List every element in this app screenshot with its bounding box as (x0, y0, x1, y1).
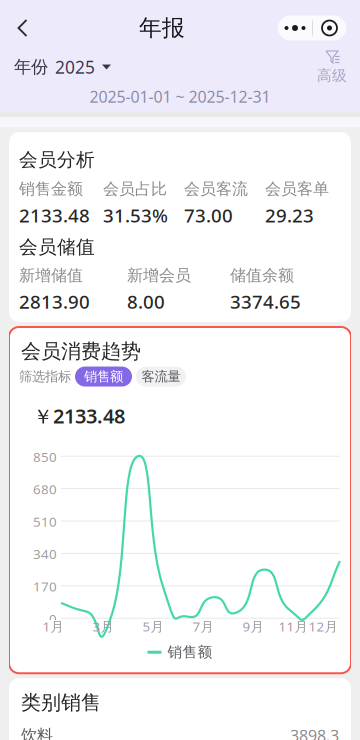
staticText: 储值余额 (230, 265, 294, 285)
staticText: 0 (49, 610, 57, 628)
staticText: 会员占比 (103, 179, 167, 199)
staticText: 筛选指标 (19, 368, 71, 385)
staticText: 12月 (308, 617, 337, 635)
staticText: 销售额 (167, 643, 212, 661)
staticText: 5月 (142, 617, 163, 635)
staticText: 会员客单 (265, 179, 329, 199)
staticText: 7月 (192, 617, 213, 635)
staticText: 类别销售 (21, 690, 101, 715)
staticText: 会员客流 (184, 179, 248, 199)
staticText: 年报 (139, 14, 185, 42)
staticText: 1月 (42, 617, 63, 635)
button[interactable]: 高级 (304, 48, 360, 86)
staticText: 510 (33, 513, 57, 530)
button[interactable]: 销售额 (75, 367, 132, 387)
staticText: 11月 (278, 617, 307, 635)
staticText: 饮料 (21, 726, 53, 740)
staticText: 新增储值 (19, 265, 83, 285)
staticText: 年份 (14, 56, 48, 78)
staticText: 170 (33, 577, 57, 595)
staticText: ￥2133.48 (33, 403, 125, 429)
staticText: 会员分析 (19, 148, 95, 171)
staticText: 会员消费趋势 (21, 339, 141, 364)
staticText: 高级 (317, 66, 347, 84)
staticText: 31.53% (103, 203, 168, 228)
staticText: 2025-01-01 ~ 2025-12-31 (89, 86, 270, 107)
staticText: 8.00 (127, 289, 165, 314)
staticText: 销售额 (84, 368, 123, 385)
staticText: 3898.3 (290, 725, 339, 740)
staticText: 3月 (92, 617, 113, 635)
staticText: 9月 (242, 617, 263, 635)
staticText: 2133.48 (19, 203, 90, 228)
button[interactable]: 客流量 (136, 367, 186, 387)
staticText: 销售金额 (19, 179, 83, 199)
staticText: 73.00 (184, 203, 233, 228)
staticText: 2813.90 (19, 289, 90, 314)
staticText: 新增会员 (127, 265, 191, 285)
staticText: 850 (33, 448, 57, 466)
button[interactable]: Back (0, 8, 46, 48)
button[interactable]: 年份 (0, 54, 125, 80)
staticText: 客流量 (141, 368, 180, 385)
staticText: 680 (33, 480, 57, 498)
staticText: 2025 (55, 55, 95, 78)
button[interactable]: More (278, 15, 346, 40)
staticText: 3374.65 (230, 289, 301, 314)
staticText: 340 (33, 545, 57, 563)
staticText: 29.23 (265, 203, 314, 228)
staticText: 会员储值 (19, 236, 95, 258)
